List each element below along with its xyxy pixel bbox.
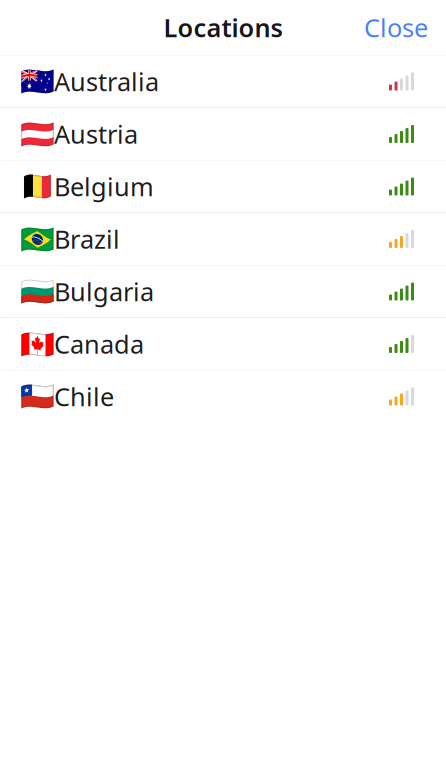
staticText: Australia — [54, 65, 159, 98]
staticText: 🇧🇬 — [20, 275, 55, 307]
staticText: 🇧🇪 — [20, 170, 55, 202]
button[interactable]: 🇧🇬 — [0, 265, 446, 318]
staticText: Canada — [54, 327, 144, 361]
staticText: 🇦🇺 — [20, 65, 55, 97]
staticText: 🇨🇱 — [20, 380, 55, 412]
button[interactable]: 🇨🇦 — [0, 318, 446, 370]
staticText: Bulgaria — [54, 275, 154, 308]
staticText: 🇨🇦 — [20, 328, 55, 360]
staticText: Brazil — [54, 222, 120, 256]
staticText: 🇦🇹 — [20, 118, 55, 150]
staticText: Belgium — [54, 170, 154, 203]
staticText: Close — [364, 11, 428, 44]
staticText: 🇧🇷 — [20, 223, 55, 255]
button[interactable]: 🇧🇷 — [0, 213, 446, 265]
button[interactable]: Close — [358, 5, 434, 50]
staticText: Chile — [54, 380, 114, 413]
button[interactable]: 🇦🇺 — [0, 55, 446, 108]
button[interactable]: 🇨🇱 — [0, 370, 446, 423]
staticText: Locations — [163, 11, 282, 44]
staticText: Austria — [54, 117, 138, 151]
button[interactable]: 🇦🇹 — [0, 108, 446, 160]
button[interactable]: 🇧🇪 — [0, 160, 446, 213]
